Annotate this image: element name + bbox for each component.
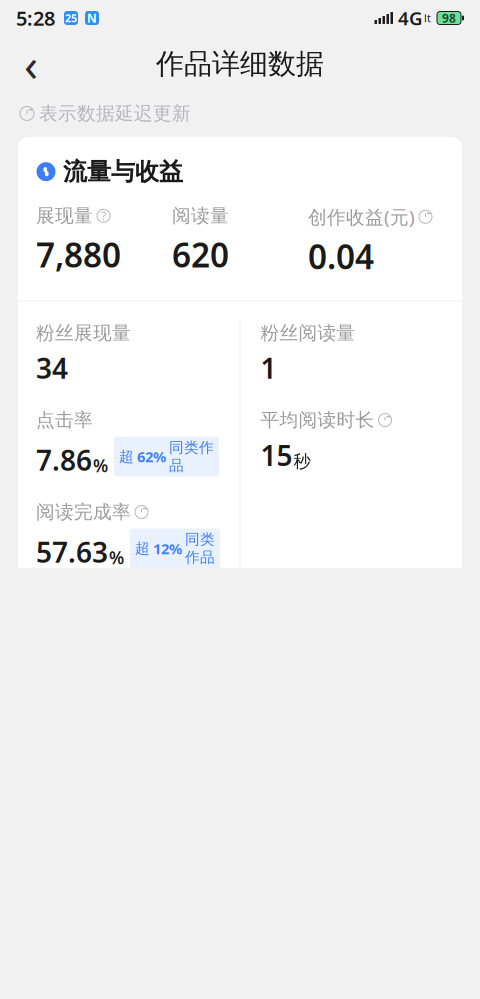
staticText: 1 bbox=[260, 349, 276, 387]
button[interactable]: Back bbox=[8, 41, 54, 87]
staticText: 25 bbox=[65, 11, 77, 25]
staticText: 点击率 bbox=[36, 409, 93, 431]
staticText: 4G bbox=[398, 6, 423, 30]
staticText: 创作收益(元) bbox=[308, 204, 415, 229]
staticText: 同类作品 bbox=[185, 530, 215, 566]
staticText: % bbox=[109, 546, 124, 569]
staticText: 同类作品 bbox=[169, 438, 214, 474]
staticText: 表示数据延迟更新 bbox=[39, 102, 191, 125]
staticText: 62% bbox=[137, 447, 166, 466]
staticText: 阅读量 bbox=[172, 204, 229, 227]
staticText: 秒 bbox=[293, 451, 310, 472]
staticText: 平均阅读时长 bbox=[260, 409, 374, 431]
staticText: 展现量 bbox=[36, 204, 93, 227]
staticText: 57.63 bbox=[36, 533, 108, 570]
staticText: 流量与收益 bbox=[63, 157, 183, 186]
staticText: lt bbox=[424, 11, 431, 25]
staticText: N bbox=[87, 10, 97, 26]
staticText: 12% bbox=[153, 539, 182, 558]
staticText: 7.86 bbox=[36, 441, 92, 479]
staticText: 5:28 bbox=[16, 5, 55, 31]
staticText: 超 bbox=[135, 539, 150, 557]
staticText: 阅读完成率 bbox=[36, 500, 131, 523]
staticText: 超 bbox=[119, 447, 134, 465]
staticText: 7,880 bbox=[36, 232, 121, 277]
staticText: 34 bbox=[36, 349, 68, 387]
staticText: 粉丝阅读量 bbox=[260, 321, 355, 344]
staticText: 0.04 bbox=[308, 234, 374, 278]
staticText: % bbox=[93, 454, 108, 477]
staticText: 620 bbox=[172, 232, 229, 277]
staticText: 15 bbox=[260, 436, 292, 474]
staticText: ‹ bbox=[24, 34, 38, 94]
staticText: 粉丝展现量 bbox=[36, 321, 131, 344]
staticText: 98 bbox=[442, 10, 456, 26]
staticText: 作品详细数据 bbox=[156, 47, 324, 81]
staticText: ? bbox=[101, 208, 106, 224]
